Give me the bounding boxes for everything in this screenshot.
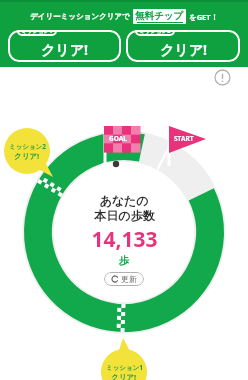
staticText: 無料チップ (135, 10, 184, 22)
staticText: ミッション2 (139, 30, 171, 35)
staticText: START (174, 134, 194, 143)
staticText: クリア! (41, 40, 88, 59)
button[interactable]: ミッション2 (1, 125, 53, 177)
staticText: ミッション1 (21, 30, 53, 35)
staticText: クリア! (160, 40, 207, 59)
staticText: クリア! (14, 151, 40, 161)
staticText: 歩 (119, 254, 129, 267)
staticText: あなたの (99, 193, 149, 208)
staticText: クリア! (111, 372, 137, 380)
button[interactable]: Information (214, 69, 231, 86)
button[interactable]: ミッション1 (98, 346, 150, 380)
button[interactable]: 更新 (104, 272, 144, 286)
staticText: GOAL (109, 134, 127, 143)
staticText: デイリーミッションクリアで (30, 12, 130, 21)
staticText: 本日の歩数 (94, 208, 155, 223)
button[interactable]: クリア! (126, 30, 240, 62)
staticText: ミッション2 (9, 142, 46, 151)
staticText: ミッション1 (106, 363, 143, 372)
button[interactable]: クリア! (8, 30, 121, 62)
staticText: 更新 (121, 274, 137, 284)
staticText: をGET！ (189, 12, 219, 22)
staticText: 14,133 (91, 225, 158, 254)
